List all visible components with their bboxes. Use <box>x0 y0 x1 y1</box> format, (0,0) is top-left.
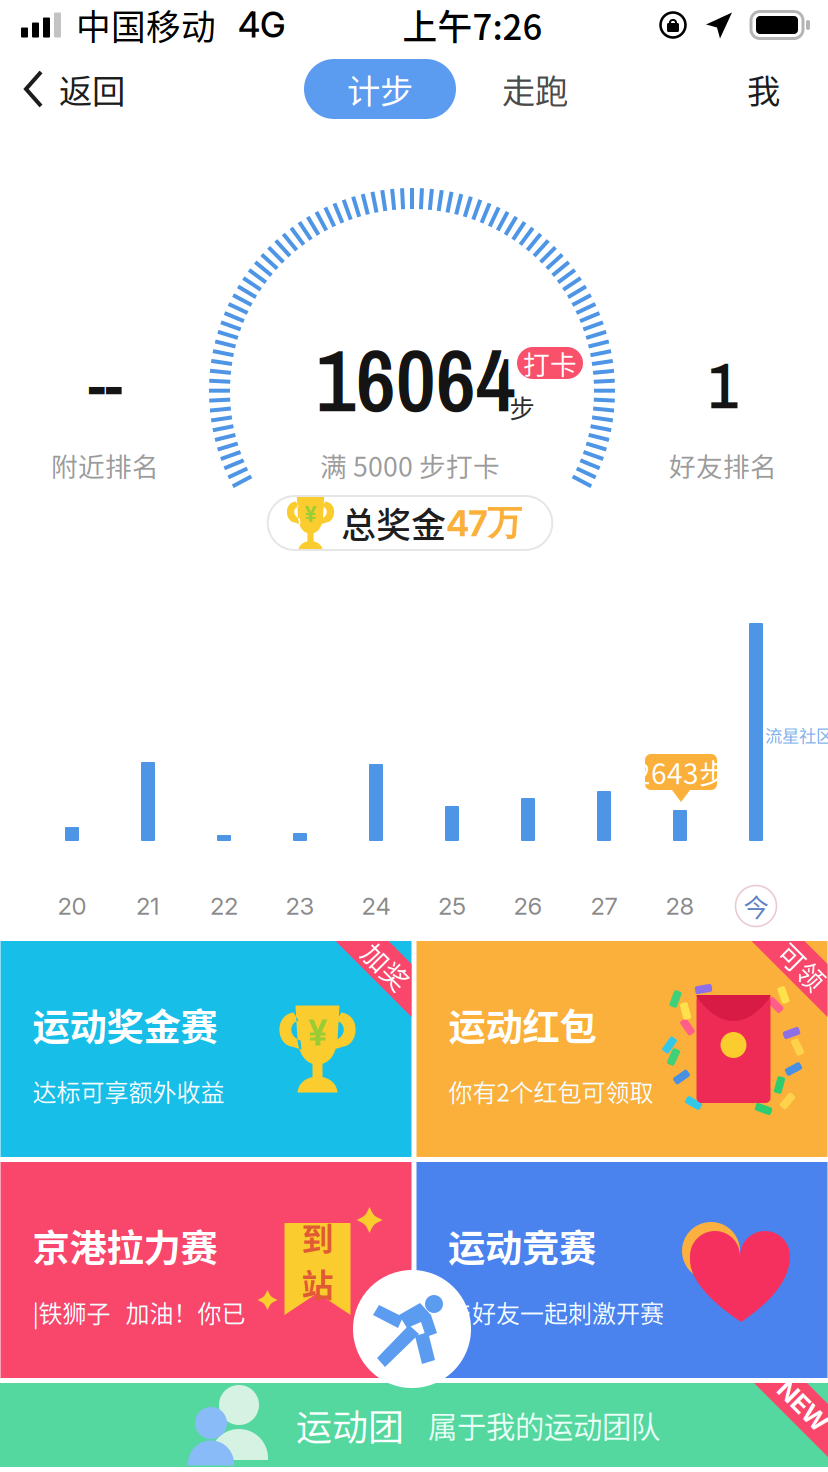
staticText: 流星社区 <box>765 722 828 748</box>
staticText: ¥ <box>308 1012 327 1054</box>
button[interactable]: 运动红包 <box>416 941 827 1157</box>
staticText: 附近排名 <box>51 446 159 484</box>
staticText: 总奖金 <box>341 498 446 548</box>
staticText: 走跑 <box>502 65 568 113</box>
staticText: 好友排名 <box>669 446 777 484</box>
staticText: 可领 <box>775 947 828 985</box>
staticText: 到 <box>301 1214 333 1260</box>
button[interactable]: ¥ <box>268 496 552 550</box>
staticText: 步 <box>509 389 534 425</box>
staticText: 47万 <box>446 501 522 545</box>
staticText: 1 <box>708 342 737 428</box>
staticText: 满 5000 步打卡 <box>320 446 500 484</box>
staticText: 加奖 <box>359 947 413 985</box>
staticText: 4G <box>238 4 286 46</box>
staticText: 计步 <box>347 65 413 113</box>
staticText: 我 <box>747 65 780 113</box>
button[interactable]: 运动竞赛 <box>416 1162 827 1378</box>
button[interactable]: 开始跑步 <box>353 1270 471 1388</box>
staticText: 与好友一起刺激开赛 <box>448 1295 664 1329</box>
staticText: 京港拉力赛 <box>32 1219 217 1273</box>
staticText: 返回 <box>59 65 125 113</box>
staticText: -- <box>88 342 122 428</box>
staticText: 今 <box>743 888 768 924</box>
staticText: NEW <box>773 1391 828 1421</box>
staticText: 25 <box>438 891 466 920</box>
staticText: |铁狮子 加油！你已 <box>32 1295 245 1329</box>
staticText: 20 <box>57 891 86 920</box>
staticText: 2643步 <box>635 752 727 792</box>
staticText: 运动奖金赛 <box>32 998 217 1052</box>
staticText: 达标可享额外收益 <box>32 1074 224 1108</box>
staticText: ¥ <box>301 487 320 529</box>
button[interactable]: 运动团 <box>0 1383 828 1467</box>
staticText: 22 <box>210 891 238 920</box>
staticText: 28 <box>665 891 694 920</box>
staticText: 站 <box>301 1260 333 1306</box>
staticText: 你有2个红包可领取 <box>448 1074 653 1108</box>
staticText: 运动红包 <box>448 998 596 1052</box>
staticText: 27 <box>590 891 617 920</box>
button[interactable]: 今 <box>735 885 776 926</box>
staticText: 16064 <box>316 322 516 438</box>
staticText: 上午7:26 <box>402 0 542 50</box>
staticText: 运动团 <box>296 1399 404 1451</box>
button[interactable]: 计步 <box>304 59 456 119</box>
button[interactable]: 我 <box>747 51 828 127</box>
staticText: 26 <box>513 891 542 920</box>
button[interactable]: 运动奖金赛 <box>0 941 411 1157</box>
staticText: 打卡 <box>523 344 577 382</box>
staticText: 24 <box>361 891 390 920</box>
staticText: 23 <box>285 891 314 920</box>
button[interactable]: 返回 <box>0 53 125 125</box>
button[interactable]: 走跑 <box>502 51 568 127</box>
staticText: 属于我的运动团队 <box>428 1404 660 1446</box>
button[interactable]: 京港拉力赛 <box>0 1162 411 1378</box>
staticText: 运动竞赛 <box>448 1219 596 1273</box>
staticText: 21 <box>136 891 160 920</box>
staticText: 中国移动 <box>76 0 216 50</box>
